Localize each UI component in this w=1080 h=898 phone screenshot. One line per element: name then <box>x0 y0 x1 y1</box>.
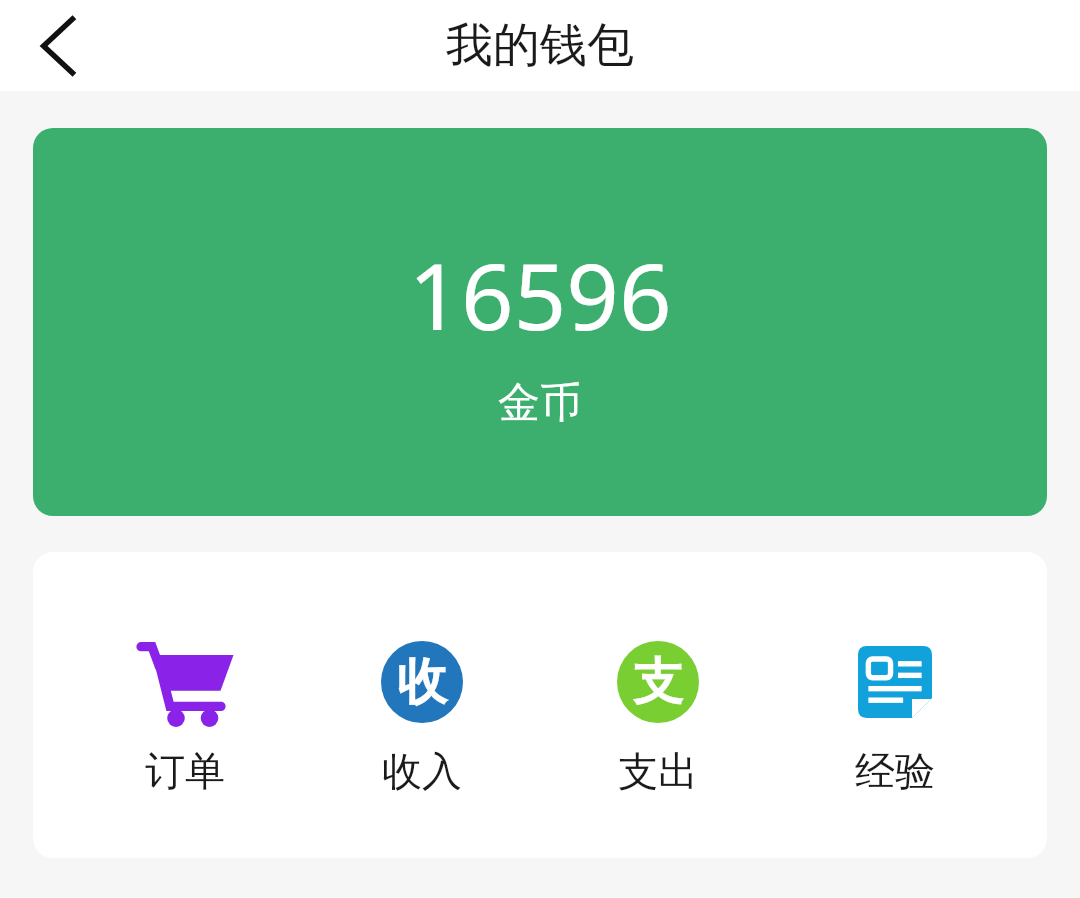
staticText: 支 <box>633 651 683 714</box>
staticText: 16596 <box>408 232 672 357</box>
staticText: 我的钱包 <box>446 16 634 75</box>
staticText: 收 <box>397 651 447 714</box>
staticText: 金币 <box>498 377 582 430</box>
button[interactable]: 16596 <box>33 128 1047 516</box>
staticText: 订单 <box>145 746 225 796</box>
staticText: 收入 <box>382 746 462 796</box>
staticText: 经验 <box>855 746 935 796</box>
button[interactable]: 收 <box>337 640 507 796</box>
button[interactable]: Back <box>20 8 96 84</box>
staticText: 支出 <box>618 746 698 796</box>
button[interactable]: 经验 <box>810 640 980 796</box>
button[interactable]: 支 <box>573 640 743 796</box>
button[interactable]: 订单 <box>100 640 270 796</box>
